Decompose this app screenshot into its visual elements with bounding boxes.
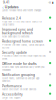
staticText: ·ıl ▮ xyxy=(48,1,53,4)
button[interactable]: Offline mode for drafts xyxy=(0,62,56,71)
button[interactable]: Back xyxy=(2,4,4,10)
staticText: Performance xyxy=(2,84,22,88)
staticText: Improved sync and background refresh xyxy=(2,28,33,35)
staticText: Redesigned home screen xyxy=(2,40,43,43)
button[interactable]: Release 2.4 xyxy=(0,16,56,26)
staticText: Now available to everyone xyxy=(2,35,29,38)
staticText: Release 2.4 xyxy=(2,16,21,20)
staticText: Preview the new layout, cards and quick … xyxy=(2,43,44,49)
staticText: Faster cold start on older devices xyxy=(2,88,36,91)
staticText: Patched a token refresh issue reported l… xyxy=(2,54,46,60)
button[interactable]: Security update xyxy=(0,51,56,60)
button[interactable]: Accessibility xyxy=(0,93,56,99)
staticText: 9:41 xyxy=(3,1,9,4)
staticText: Security update xyxy=(2,51,27,54)
staticText: Latest release notes and recent changes xyxy=(2,9,41,12)
staticText: Updates xyxy=(5,5,19,9)
button[interactable]: Performance xyxy=(0,84,56,91)
staticText: Accessibility xyxy=(2,93,23,96)
staticText: Drafts now sync automatically when you r… xyxy=(2,66,44,71)
staticText: Notification grouping xyxy=(2,73,35,77)
button[interactable]: Notification grouping xyxy=(0,73,56,83)
button[interactable]: Redesigned home screen xyxy=(0,40,56,49)
staticText: Larger text support xyxy=(2,96,21,99)
staticText: ‹ xyxy=(2,4,4,10)
staticText: Offline mode for drafts xyxy=(2,62,37,66)
button[interactable]: Improved sync and background refresh xyxy=(0,28,56,38)
staticText: Adds new filters and faster search for l… xyxy=(2,20,42,26)
staticText: Quiet hours, summaries and per app contr… xyxy=(2,77,39,83)
